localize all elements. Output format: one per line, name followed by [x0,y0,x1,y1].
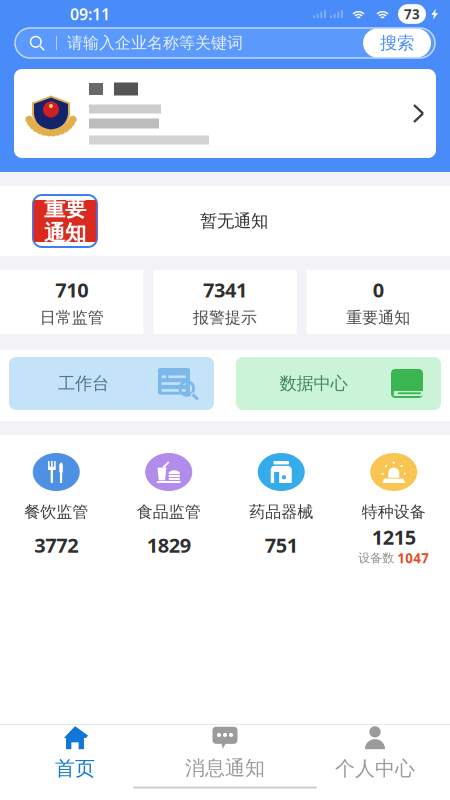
staticText: 食品监管 [137,502,201,522]
staticText: 首页 [55,756,95,781]
staticText: 搜索 [380,32,414,54]
button[interactable]: 药品器械 [225,453,337,588]
staticText: 通知 [44,220,86,246]
button[interactable]: 餐饮监管 [0,453,112,588]
staticText: 73 [404,5,420,23]
staticText: 暂无通知 [200,210,268,232]
button[interactable]: 7341 [153,270,297,334]
staticText: 1829 [147,532,191,558]
staticText: 日常监管 [40,308,104,328]
button[interactable]: 搜索 [363,28,431,58]
staticText: 消息通知 [185,756,265,780]
button[interactable]: 0 [307,270,450,334]
staticText: 09:11 [70,3,110,25]
button[interactable]: 数据中心 [236,357,441,410]
staticText: 药品器械 [249,502,313,522]
staticText: 请输入企业名称等关键词 [67,33,243,53]
staticText: 报警提示 [193,308,257,328]
button[interactable] [0,58,450,158]
button[interactable]: 特种设备 [337,453,450,588]
staticText: 710 [55,276,88,303]
staticText: 重要 [44,196,86,222]
button[interactable]: 消息通知 [150,725,300,783]
button[interactable]: 食品监管 [112,453,225,588]
button[interactable]: 工作台 [9,357,214,410]
staticText: 0 [373,276,384,303]
staticText: 重要通知 [346,308,410,328]
staticText: 餐饮监管 [24,502,88,522]
button[interactable]: 个人中心 [300,725,450,783]
button[interactable]: 首页 [0,725,150,783]
staticText: 1047 [397,549,429,567]
staticText: 3772 [34,532,78,558]
staticText: 特种设备 [362,502,426,522]
staticText: 设备数 [358,551,394,565]
staticText: 个人中心 [335,756,415,781]
button[interactable]: 710 [0,270,143,334]
staticText: 1215 [372,524,416,550]
staticText: 数据中心 [279,373,347,394]
staticText: 7341 [203,276,247,303]
staticText: 工作台 [58,373,109,394]
staticText: 751 [265,532,298,558]
